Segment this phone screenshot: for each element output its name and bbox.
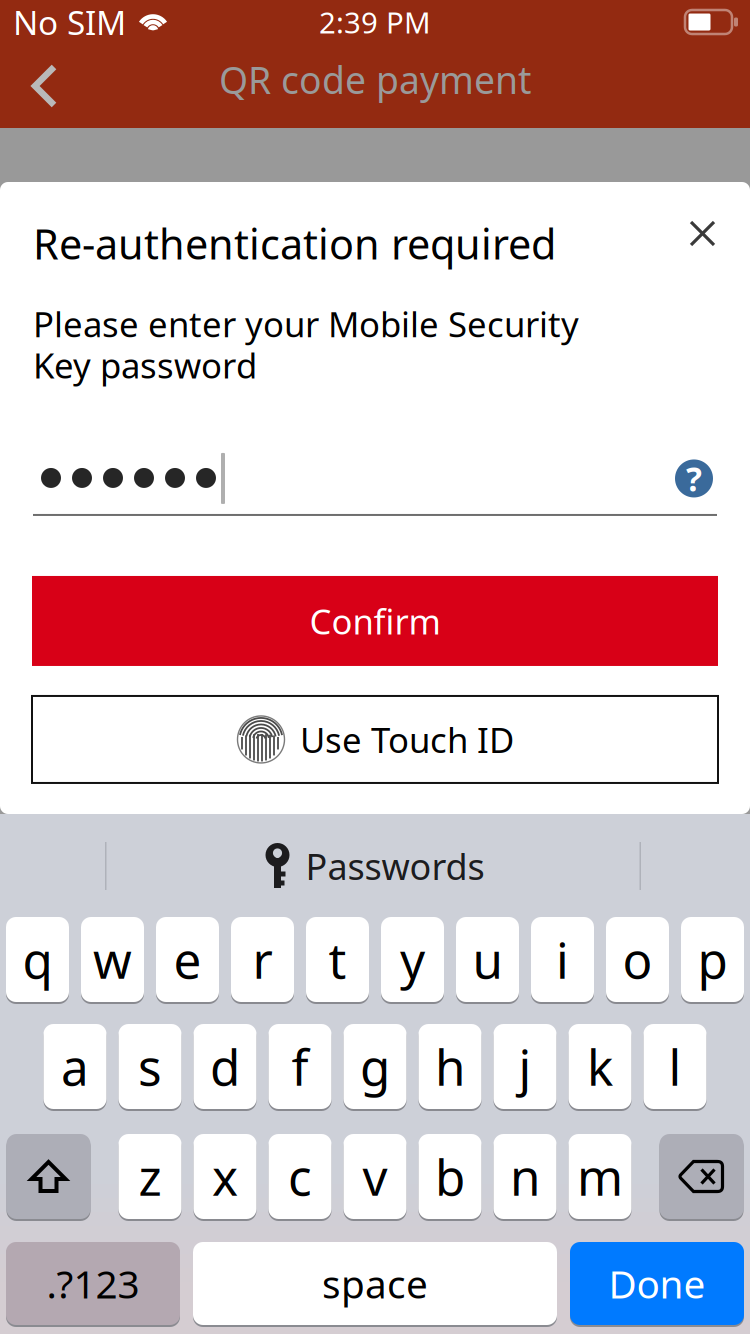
staticText: e	[173, 927, 201, 992]
staticText: d	[210, 1034, 240, 1099]
button[interactable]: t	[306, 917, 369, 1004]
staticText: s	[138, 1034, 162, 1099]
staticText: u	[472, 927, 502, 992]
button[interactable]: Delete	[659, 1134, 743, 1221]
staticText: f	[291, 1034, 308, 1099]
button[interactable]: i	[531, 917, 594, 1004]
button[interactable]: Back	[0, 49, 78, 123]
button[interactable]: c	[268, 1134, 331, 1221]
staticText: Re-authentication required	[33, 216, 556, 271]
button[interactable]: q	[6, 917, 69, 1004]
button[interactable]: d	[193, 1024, 256, 1111]
staticText: i	[556, 927, 569, 992]
button[interactable]: Use Touch ID	[32, 696, 718, 783]
staticText: g	[360, 1034, 390, 1099]
staticText: w	[93, 927, 132, 992]
staticText: v	[362, 1144, 387, 1209]
button[interactable]: Passwords	[251, 834, 498, 898]
staticText: Confirm	[309, 598, 440, 644]
staticText: z	[138, 1144, 161, 1209]
button[interactable]: b	[418, 1134, 481, 1221]
staticText: Please enter your Mobile Security	[33, 301, 579, 347]
staticText: y	[400, 927, 425, 992]
button[interactable]: Confirm	[32, 576, 718, 666]
button[interactable]: o	[606, 917, 669, 1004]
button[interactable]: a	[43, 1024, 106, 1111]
button[interactable]: Help	[671, 453, 717, 504]
staticText: 2:39 PM	[319, 2, 431, 41]
button[interactable]: e	[156, 917, 219, 1004]
button[interactable]: y	[381, 917, 444, 1004]
button[interactable]: r	[231, 917, 294, 1004]
button[interactable]: x	[193, 1134, 256, 1221]
staticText: h	[435, 1034, 465, 1099]
staticText: Done	[608, 1258, 705, 1309]
staticText: m	[577, 1144, 623, 1209]
button[interactable]: n	[493, 1134, 556, 1221]
button[interactable]: w	[81, 917, 144, 1004]
staticText: b	[435, 1144, 465, 1209]
staticText: k	[587, 1034, 613, 1099]
button[interactable]: Shift	[6, 1134, 90, 1221]
button[interactable]: .?123	[6, 1242, 180, 1327]
staticText: t	[328, 927, 346, 992]
button[interactable]: Done	[570, 1242, 744, 1327]
button[interactable]: f	[268, 1024, 331, 1111]
staticText: j	[518, 1034, 531, 1099]
staticText: Use Touch ID	[300, 716, 514, 762]
button[interactable]: z	[118, 1134, 181, 1221]
staticText: r	[252, 927, 272, 992]
staticText: c	[288, 1144, 312, 1209]
staticText: l	[668, 1034, 681, 1099]
staticText: p	[697, 927, 727, 992]
button[interactable]: k	[568, 1024, 631, 1111]
button[interactable]: j	[493, 1024, 556, 1111]
button[interactable]: u	[456, 917, 519, 1004]
button[interactable]: v	[343, 1134, 406, 1221]
button[interactable]: m	[568, 1134, 631, 1221]
staticText: space	[322, 1258, 428, 1309]
staticText: QR code payment	[219, 55, 531, 104]
button[interactable]: p	[681, 917, 744, 1004]
staticText: a	[61, 1034, 89, 1099]
staticText: n	[510, 1144, 540, 1209]
staticText: No SIM	[13, 0, 126, 44]
staticText: Passwords	[305, 842, 484, 890]
staticText: Key password	[33, 342, 257, 388]
button[interactable]: l	[643, 1024, 706, 1111]
staticText: q	[22, 927, 52, 992]
staticText: o	[622, 927, 652, 992]
button[interactable]: s	[118, 1024, 181, 1111]
button[interactable]: h	[418, 1024, 481, 1111]
staticText: x	[212, 1144, 238, 1209]
button[interactable]: space	[193, 1242, 557, 1327]
button[interactable]: Close	[688, 216, 717, 248]
staticText: ?	[686, 456, 702, 501]
button[interactable]: g	[343, 1024, 406, 1111]
staticText: .?123	[46, 1258, 139, 1309]
